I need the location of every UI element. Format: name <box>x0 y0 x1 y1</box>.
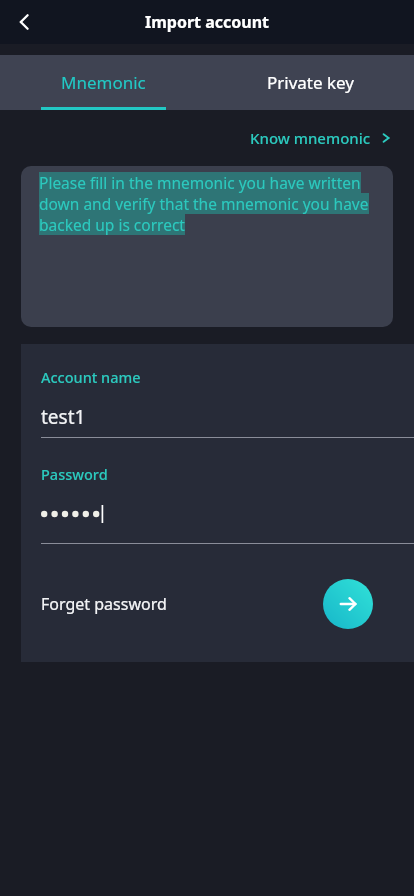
button[interactable]: Continue <box>323 579 373 629</box>
button[interactable]: Private key <box>207 55 414 110</box>
button[interactable]: Back <box>0 0 48 44</box>
button[interactable] <box>21 499 414 529</box>
staticText: Mnemonic <box>61 71 146 94</box>
staticText: down and verify that the mnemonic you ha… <box>39 193 369 214</box>
staticText: Know mnemonic <box>250 128 371 148</box>
button[interactable]: Please fill in the mnemonic you have wri… <box>21 166 393 327</box>
staticText: backed up is correct <box>39 214 185 235</box>
button[interactable]: Know mnemonic <box>250 128 392 148</box>
button[interactable]: test1 <box>21 400 414 434</box>
staticText: Please fill in the mnemonic you have wri… <box>39 172 361 193</box>
button[interactable]: Mnemonic <box>0 55 207 110</box>
staticText: test1 <box>41 404 86 430</box>
staticText: Account name <box>41 367 141 387</box>
staticText: Password <box>41 464 108 484</box>
staticText: Private key <box>267 71 355 94</box>
button[interactable]: Forget password <box>41 593 167 615</box>
staticText: Import account <box>145 11 270 33</box>
